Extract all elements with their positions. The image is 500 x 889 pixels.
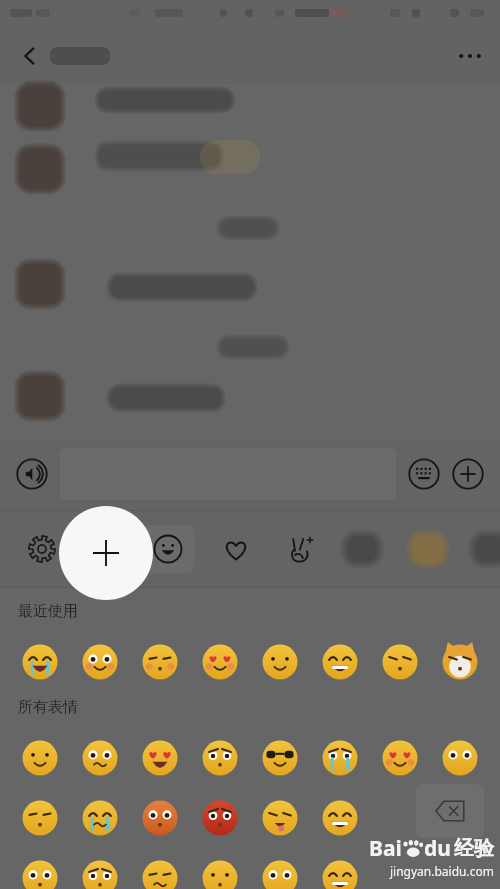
button[interactable]: More options bbox=[448, 34, 492, 78]
button[interactable]: Emoji bbox=[78, 796, 122, 840]
button[interactable]: Emoji bbox=[318, 736, 362, 780]
staticText: 最近使用 bbox=[18, 602, 78, 621]
button[interactable]: Emoji bbox=[18, 856, 62, 889]
button[interactable]: Favourites bbox=[210, 511, 262, 587]
button[interactable]: Emoji bbox=[318, 856, 362, 889]
button[interactable]: Emoji bbox=[142, 525, 194, 573]
button[interactable]: Emoji bbox=[18, 796, 62, 840]
button[interactable]: Emoji bbox=[318, 796, 362, 840]
button[interactable]: Emoji bbox=[198, 796, 242, 840]
button[interactable]: Emoji bbox=[378, 640, 422, 684]
button[interactable]: Emoji bbox=[198, 856, 242, 889]
button[interactable]: Emoji bbox=[258, 640, 302, 684]
button[interactable]: Add sticker bbox=[80, 511, 132, 587]
button[interactable]: Emoji bbox=[78, 640, 122, 684]
staticText: 所有表情 bbox=[18, 698, 78, 717]
button[interactable]: Voice message bbox=[10, 452, 54, 496]
button[interactable]: Settings bbox=[16, 511, 68, 587]
button[interactable]: Emoji bbox=[378, 736, 422, 780]
button[interactable]: Keyboard bbox=[402, 452, 446, 496]
button[interactable]: Emoji bbox=[78, 736, 122, 780]
button[interactable]: Emoji bbox=[18, 640, 62, 684]
button[interactable]: Emoji bbox=[138, 640, 182, 684]
button[interactable]: More functions bbox=[446, 452, 490, 496]
button[interactable]: Emoji bbox=[318, 640, 362, 684]
button[interactable]: Emoji bbox=[258, 736, 302, 780]
button[interactable]: Back bbox=[8, 34, 52, 78]
button[interactable]: Emoji bbox=[78, 856, 122, 889]
button[interactable]: Emoji bbox=[138, 796, 182, 840]
button[interactable]: Emoji bbox=[258, 856, 302, 889]
button[interactable]: Emoji bbox=[438, 640, 482, 684]
button[interactable]: Emoji bbox=[138, 736, 182, 780]
button[interactable]: Emoji bbox=[18, 736, 62, 780]
button[interactable]: Emoji bbox=[138, 856, 182, 889]
button[interactable]: Backspace bbox=[416, 784, 484, 838]
button[interactable]: Emoji bbox=[198, 640, 242, 684]
staticText: 经验 bbox=[454, 836, 494, 861]
button[interactable]: Emoji bbox=[438, 736, 482, 780]
button[interactable]: Emoji bbox=[198, 736, 242, 780]
staticText: du bbox=[424, 834, 451, 863]
button[interactable]: Add sticker bbox=[59, 506, 153, 600]
staticText: jingyan.baidu.com bbox=[390, 863, 494, 879]
button[interactable]: Emoji bbox=[258, 796, 302, 840]
button[interactable]: Gesture stickers bbox=[275, 511, 327, 587]
staticText: Bai bbox=[369, 834, 402, 863]
